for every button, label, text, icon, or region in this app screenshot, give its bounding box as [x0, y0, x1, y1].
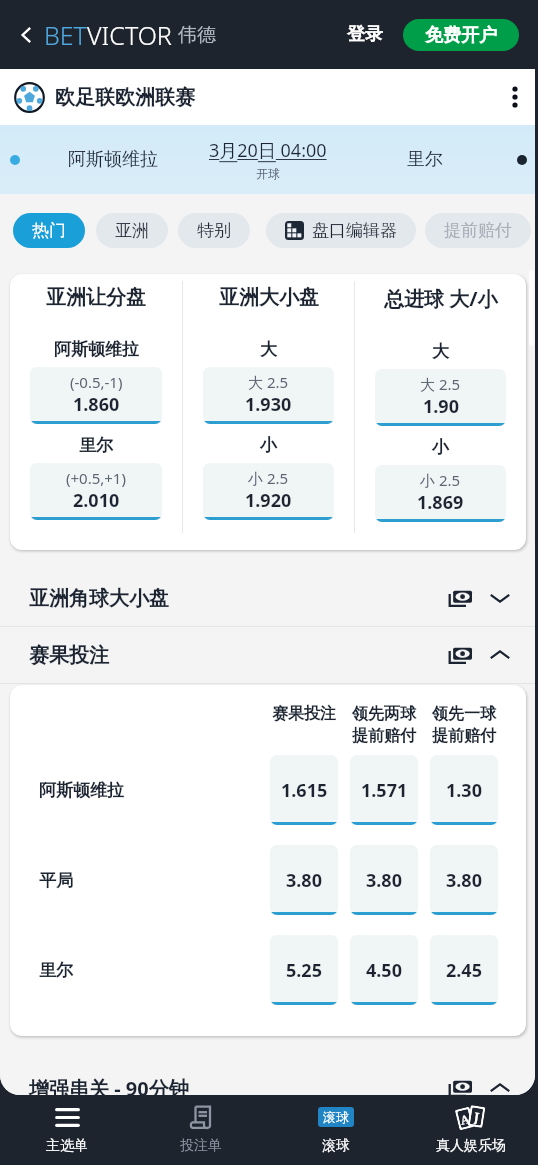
button[interactable]: (-0.5,-1): [30, 367, 162, 424]
button[interactable]: 投注单: [134, 1095, 268, 1165]
staticText: 4.50: [366, 958, 402, 983]
staticText: 亚洲大小盘: [219, 285, 319, 310]
button[interactable]: (+0.5,+1): [30, 463, 162, 520]
staticText: 登录: [347, 23, 383, 46]
staticText: 1.615: [281, 778, 328, 803]
button[interactable]: 1.30: [430, 755, 498, 825]
staticText: 赛果投注: [272, 704, 336, 724]
staticText: 赛果投注: [29, 643, 109, 668]
staticText: 主选单: [46, 1137, 88, 1155]
button[interactable]: A: [403, 1095, 538, 1165]
button[interactable]: 3.80: [270, 845, 338, 915]
button[interactable]: Back: [12, 20, 42, 50]
staticText: 滚球: [322, 1137, 350, 1155]
staticText: 小: [432, 437, 449, 458]
staticText: 亚洲: [115, 220, 149, 241]
staticText: 1.869: [417, 490, 464, 515]
button[interactable]: 特别: [178, 213, 250, 248]
staticText: 投注单: [180, 1137, 222, 1155]
staticText: 开球: [256, 166, 280, 181]
button[interactable]: 5.25: [270, 935, 338, 1005]
staticText: VICTOR: [87, 18, 172, 52]
staticText: 大: [260, 339, 277, 360]
staticText: 大 2.5: [420, 374, 461, 394]
staticText: 1.920: [245, 488, 292, 513]
staticText: 小 2.5: [248, 468, 289, 488]
staticText: J: [473, 1108, 481, 1125]
staticText: 亚洲让分盘: [46, 285, 146, 310]
staticText: 伟德: [178, 23, 216, 47]
staticText: 3月20日 04:00: [209, 138, 327, 163]
staticText: 3.80: [446, 868, 482, 893]
staticText: 3.80: [286, 868, 322, 893]
staticText: 免费开户: [425, 24, 497, 47]
staticText: 领先一球 提前赔付: [432, 704, 496, 745]
button[interactable]: 亚洲: [96, 213, 168, 248]
button[interactable]: 4.50: [350, 935, 418, 1005]
staticText: 1.571: [361, 778, 408, 803]
button[interactable]: 小 2.5: [203, 463, 334, 520]
staticText: 里尔: [407, 148, 443, 171]
button[interactable]: 盘口编辑器: [266, 213, 416, 248]
staticText: 领先两球 提前赔付: [352, 704, 416, 745]
button[interactable]: 热门: [13, 213, 85, 248]
button[interactable]: 增强串关 - 90分钟: [0, 1060, 535, 1095]
button[interactable]: 提前赔付: [425, 213, 531, 248]
button[interactable]: 赛果投注: [0, 627, 535, 683]
button[interactable]: 1.571: [350, 755, 418, 825]
staticText: 1.30: [446, 778, 482, 803]
staticText: A: [458, 1110, 472, 1128]
staticText: (-0.5,-1): [70, 372, 123, 392]
staticText: 小 2.5: [420, 470, 461, 490]
button[interactable]: 3.80: [430, 845, 498, 915]
button[interactable]: 阿斯顿维拉: [0, 125, 535, 194]
staticText: 里尔: [79, 435, 113, 456]
button[interactable]: 免费开户: [403, 19, 519, 51]
staticText: 大 2.5: [248, 372, 289, 392]
staticText: (+0.5,+1): [66, 468, 126, 488]
staticText: 滚球: [323, 1109, 349, 1125]
staticText: 大: [432, 341, 449, 362]
staticText: 2.010: [73, 488, 120, 513]
staticText: 增强串关 - 90分钟: [29, 1075, 189, 1095]
staticText: 真人娱乐场: [436, 1137, 506, 1155]
staticText: 亚洲角球大小盘: [29, 586, 169, 611]
button[interactable]: 2.45: [430, 935, 498, 1005]
staticText: 提前赔付: [444, 220, 512, 241]
button[interactable]: 亚洲角球大小盘: [0, 570, 535, 626]
staticText: 热门: [32, 220, 66, 241]
staticText: 阿斯顿维拉: [68, 148, 158, 171]
button[interactable]: 3.80: [350, 845, 418, 915]
staticText: 总进球 大/小: [384, 285, 498, 312]
staticText: 2.45: [446, 958, 482, 983]
staticText: 里尔: [39, 960, 264, 981]
staticText: BET: [44, 18, 87, 52]
staticText: 3.80: [366, 868, 402, 893]
button[interactable]: 小 2.5: [375, 465, 506, 522]
staticText: 欧足联欧洲联赛: [55, 85, 195, 110]
button[interactable]: 1.615: [270, 755, 338, 825]
button[interactable]: 登录: [339, 17, 391, 52]
button[interactable]: 大 2.5: [203, 367, 334, 424]
staticText: 1.930: [245, 392, 292, 417]
staticText: 平局: [39, 870, 264, 891]
staticText: 阿斯顿维拉: [54, 339, 139, 360]
staticText: 特别: [197, 220, 231, 241]
staticText: 小: [260, 435, 277, 456]
button[interactable]: More options: [499, 81, 531, 113]
staticText: 阿斯顿维拉: [39, 780, 264, 801]
staticText: 5.25: [286, 958, 322, 983]
button[interactable]: 主选单: [0, 1095, 134, 1165]
button[interactable]: 滚球: [268, 1095, 403, 1165]
button[interactable]: 大 2.5: [375, 369, 506, 426]
staticText: 盘口编辑器: [312, 220, 397, 241]
staticText: 1.860: [73, 392, 120, 417]
staticText: 1.90: [423, 394, 459, 419]
